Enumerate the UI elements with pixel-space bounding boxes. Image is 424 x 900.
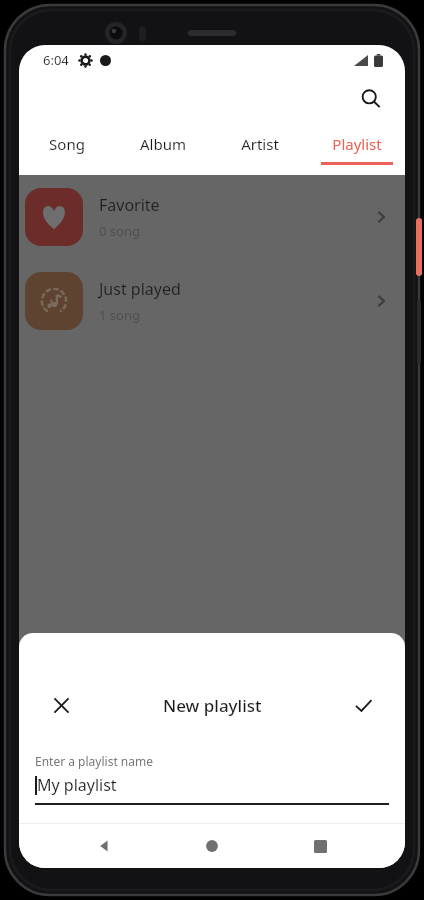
button[interactable]: Confirm [343, 685, 383, 725]
staticText: Playlist [332, 134, 382, 154]
staticText: Enter a playlist name [35, 753, 153, 769]
staticText: 1 song [99, 306, 140, 324]
button[interactable]: Artist [211, 123, 308, 175]
staticText: Favorite [99, 194, 160, 216]
staticText: My playlist [37, 774, 117, 796]
button[interactable]: Back [83, 824, 127, 868]
button[interactable]: Playlist [308, 123, 405, 175]
button[interactable]: Home [190, 824, 234, 868]
staticText: 0 song [99, 222, 140, 240]
staticText: Just played [99, 278, 181, 300]
button[interactable]: Just played [19, 269, 405, 333]
button[interactable]: Close [41, 685, 81, 725]
staticText: Song [49, 134, 85, 154]
staticText: New playlist [163, 694, 262, 717]
button[interactable]: Album [115, 123, 211, 175]
button[interactable]: Song [19, 123, 115, 175]
staticText: Album [140, 134, 186, 154]
staticText: Artist [241, 134, 279, 154]
button[interactable]: Recent apps [298, 824, 342, 868]
button[interactable]: Favorite [19, 185, 405, 249]
button[interactable]: Search [351, 79, 391, 119]
staticText: 6:04 [43, 51, 69, 69]
button[interactable]: Enter a playlist name [35, 753, 389, 805]
